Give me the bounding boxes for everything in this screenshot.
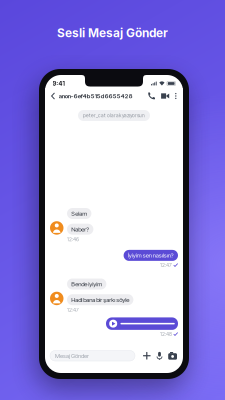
staticText: İyiyim sen nasılsın? [128, 252, 174, 259]
staticText: Hadi bana bir şarkı söyle [71, 296, 129, 303]
button[interactable]: Add attachment [142, 351, 152, 361]
button[interactable]: Voice call [145, 89, 158, 103]
staticText: anon-6ef4b515d6655428 [59, 92, 133, 100]
staticText: Naber? [71, 226, 89, 233]
staticText: 12:47 [160, 262, 172, 268]
button[interactable]: More options [172, 89, 179, 103]
staticText: peter_cat olarak yazıyorsun [83, 112, 145, 118]
button[interactable]: Back [48, 89, 58, 103]
staticText: 12:47 [67, 307, 79, 313]
staticText: 12:48 [160, 331, 172, 337]
staticText: 9:41 [52, 80, 64, 87]
staticText: 12:46 [67, 236, 79, 243]
button[interactable]: Mesaj Gönder [50, 350, 135, 361]
staticText: Mesaj Gönder [55, 352, 89, 359]
button[interactable]: Video call [158, 89, 172, 103]
button[interactable]: Record voice message [155, 351, 164, 361]
button[interactable]: Camera [167, 351, 178, 361]
staticText: Bende iyiyim [71, 280, 102, 288]
staticText: Selam [71, 210, 87, 217]
staticText: Sesli Mesaj Gönder [57, 26, 168, 40]
